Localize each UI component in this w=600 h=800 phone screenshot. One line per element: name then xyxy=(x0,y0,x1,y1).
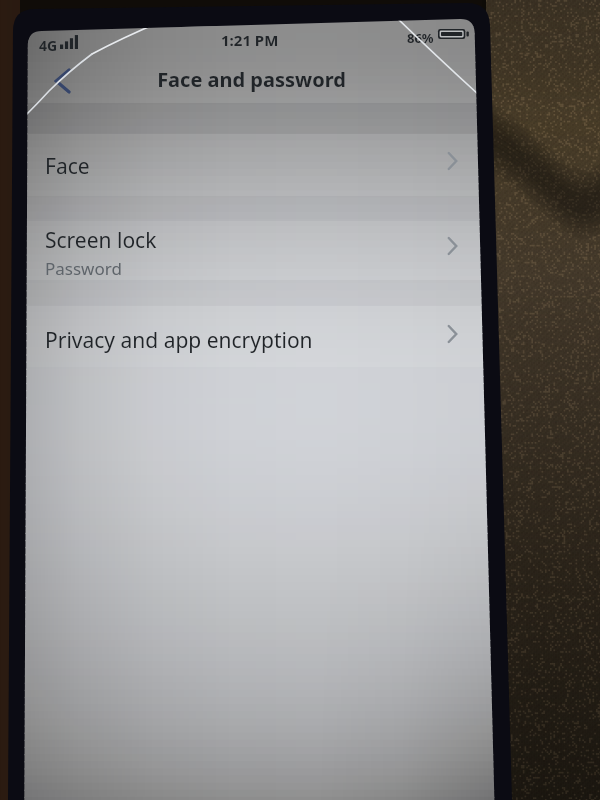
staticText: Face and password xyxy=(157,66,346,93)
staticText: 1:21 PM xyxy=(221,30,279,50)
button[interactable]: Privacy and app encryption xyxy=(29,305,478,367)
staticText: 4G xyxy=(39,36,58,55)
staticText: Privacy and app encryption xyxy=(45,326,313,355)
staticText: Password xyxy=(45,257,122,280)
staticText: 86% xyxy=(407,29,434,47)
staticText: Face xyxy=(45,152,90,181)
staticText: Screen lock xyxy=(45,226,157,255)
button[interactable]: Face xyxy=(29,134,478,196)
button[interactable]: Screen lock xyxy=(29,221,478,280)
button[interactable]: Back xyxy=(39,58,85,104)
